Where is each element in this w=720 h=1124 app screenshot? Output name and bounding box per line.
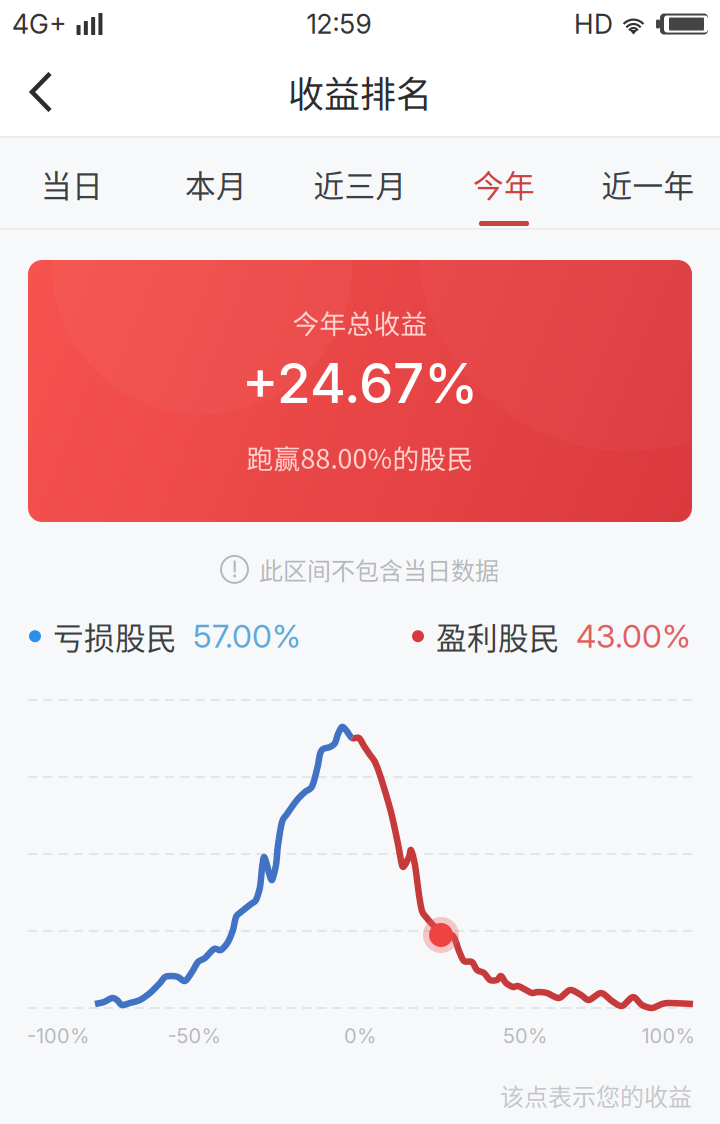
staticText: 此区间不包含当日数据 — [259, 552, 499, 587]
staticText: 50% — [503, 1024, 547, 1048]
staticText: 12:59 — [306, 8, 371, 40]
button[interactable]: 本月 — [144, 138, 288, 230]
staticText: 该点表示您的收益 — [500, 1078, 692, 1113]
button[interactable]: 近三月 — [288, 138, 432, 230]
staticText: 盈利股民 — [436, 614, 560, 658]
staticText: 4G+ — [12, 8, 66, 40]
button[interactable]: 近一年 — [576, 138, 720, 230]
staticText: 本月 — [185, 162, 247, 206]
button[interactable]: 当日 — [0, 138, 144, 230]
staticText: 近三月 — [313, 162, 406, 206]
staticText: 收益排名 — [288, 66, 432, 118]
staticText: -50% — [167, 1024, 220, 1048]
staticText: 今年 — [473, 162, 535, 206]
staticText: 100% — [641, 1024, 694, 1048]
button[interactable]: Back — [0, 48, 75, 136]
staticText: ! — [231, 556, 237, 583]
staticText: 0% — [344, 1024, 376, 1048]
staticText: 跑赢88.00%的股民 — [246, 438, 473, 476]
staticText: 57.00% — [193, 617, 301, 655]
staticText: HD — [574, 8, 613, 40]
staticText: 近一年 — [601, 162, 694, 206]
staticText: 今年总收益 — [292, 303, 427, 341]
button[interactable]: 今年 — [432, 138, 576, 230]
staticText: 亏损股民 — [53, 614, 177, 658]
staticText: 43.00% — [576, 617, 691, 655]
staticText: -100% — [27, 1024, 89, 1048]
staticText: 当日 — [41, 162, 103, 206]
staticText: +24.67% — [242, 350, 478, 416]
